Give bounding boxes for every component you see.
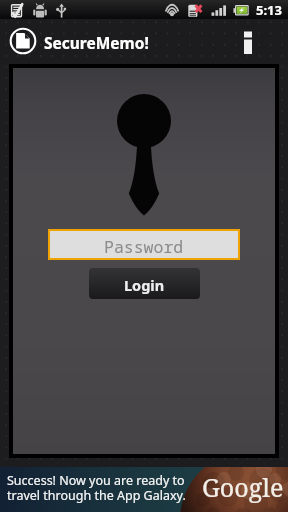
- staticText: Google: [202, 470, 284, 504]
- button[interactable]: Info: [228, 19, 268, 64]
- button[interactable]: Success! Now you are ready to: [0, 467, 288, 512]
- staticText: Password: [104, 235, 184, 257]
- staticText: travel through the App Galaxy.: [7, 487, 186, 504]
- staticText: Login: [124, 275, 165, 295]
- staticText: 5:13: [256, 1, 282, 19]
- staticText: SecureMemo!: [44, 32, 149, 53]
- button[interactable]: Login: [89, 268, 200, 299]
- staticText: Success! Now you are ready to: [7, 472, 185, 489]
- button[interactable]: Password: [50, 231, 238, 258]
